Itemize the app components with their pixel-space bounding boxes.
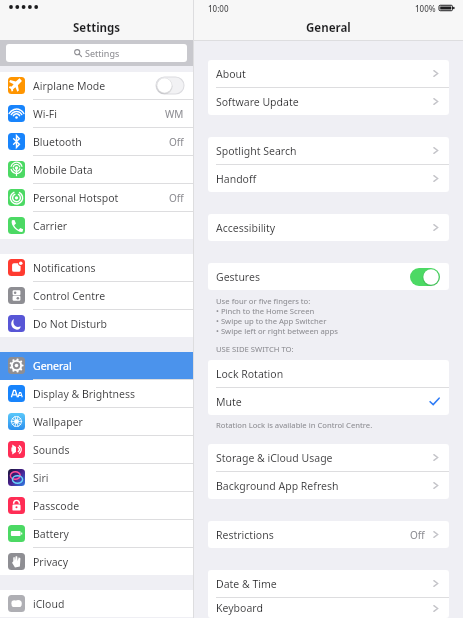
button[interactable]: Handoff	[208, 165, 449, 192]
staticText: Date & Time	[216, 577, 431, 591]
button[interactable]: Battery	[0, 520, 193, 547]
button[interactable]: Passcode	[0, 492, 193, 519]
staticText: • Swipe left or right between apps	[216, 326, 338, 336]
staticText: Carrier	[33, 219, 184, 233]
staticText: USE SIDE SWITCH TO:	[216, 344, 294, 354]
staticText: Settings	[85, 47, 120, 59]
staticText: Passcode	[33, 499, 184, 513]
staticText: Lock Rotation	[216, 367, 440, 381]
staticText: Battery	[33, 527, 184, 541]
staticText: Background App Refresh	[216, 479, 431, 493]
staticText: WM	[165, 107, 184, 121]
staticText: Spotlight Search	[216, 144, 431, 158]
button[interactable]: Background App Refresh	[208, 472, 449, 499]
staticText: About	[216, 67, 431, 81]
staticText: Restrictions	[216, 528, 410, 542]
button[interactable]: Privacy	[0, 548, 193, 575]
staticText: Storage & iCloud Usage	[216, 451, 431, 465]
button[interactable]: Airplane Mode	[0, 72, 193, 99]
button[interactable]: Bluetooth	[0, 128, 193, 155]
button[interactable]: Storage & iCloud Usage	[208, 444, 449, 471]
staticText: Software Update	[216, 95, 431, 109]
button[interactable]: Wi-Fi	[0, 100, 193, 127]
button[interactable]: Mobile Data	[0, 156, 193, 183]
staticText: Wallpaper	[33, 415, 184, 429]
staticText: Do Not Disturb	[33, 317, 184, 331]
staticText: Rotation Lock is available in Control Ce…	[216, 420, 373, 430]
staticText: Off	[169, 191, 184, 205]
staticText: Personal Hotspot	[33, 191, 169, 205]
staticText: Mobile Data	[33, 163, 184, 177]
staticText: Off	[410, 528, 425, 542]
button[interactable]: Date & Time	[208, 570, 449, 597]
button[interactable]: Control Centre	[0, 282, 193, 309]
staticText: 100%	[415, 3, 436, 14]
button[interactable]: Display & Brightness	[0, 380, 193, 407]
staticText: Keyboard	[216, 601, 431, 615]
staticText: Display & Brightness	[33, 387, 184, 401]
button[interactable]: Personal Hotspot	[0, 184, 193, 211]
staticText: Airplane Mode	[33, 79, 156, 93]
staticText: Off	[169, 135, 184, 149]
staticText: Gestures	[216, 270, 410, 284]
staticText: Mute	[216, 395, 429, 409]
staticText: Bluetooth	[33, 135, 169, 149]
button[interactable]: Search Settings	[6, 44, 187, 62]
staticText: 10:00	[208, 3, 229, 14]
button[interactable]: Spotlight Search	[208, 137, 449, 164]
staticText: Handoff	[216, 172, 431, 186]
staticText: • Swipe up to the App Switcher	[216, 316, 327, 326]
staticText: Privacy	[33, 555, 184, 569]
staticText: Accessibility	[216, 221, 431, 235]
staticText: Siri	[33, 471, 184, 485]
button[interactable]: Software Update	[208, 88, 449, 115]
staticText: Use four or five fingers to:	[216, 296, 311, 306]
button[interactable]: Switch off	[156, 77, 184, 94]
staticText: • Pinch to the Home Screen	[216, 306, 315, 316]
button[interactable]: Do Not Disturb	[0, 310, 193, 337]
staticText: General	[306, 20, 351, 36]
staticText: iCloud	[33, 597, 184, 611]
staticText: Sounds	[33, 443, 184, 457]
button[interactable]: Accessibility	[208, 214, 449, 241]
button[interactable]: Mute	[208, 388, 449, 415]
button[interactable]: Notifications	[0, 254, 193, 281]
button[interactable]: Keyboard	[208, 598, 449, 618]
staticText: General	[33, 359, 184, 373]
button[interactable]: iCloud	[0, 590, 193, 617]
button[interactable]: General	[0, 352, 193, 379]
staticText: Notifications	[33, 261, 184, 275]
button[interactable]: Restrictions	[208, 521, 449, 548]
staticText: Control Centre	[33, 289, 184, 303]
staticText: Settings	[73, 20, 121, 36]
button[interactable]: Gestures	[208, 263, 449, 290]
button[interactable]: About	[208, 60, 449, 87]
button[interactable]: Siri	[0, 464, 193, 491]
staticText: Wi-Fi	[33, 107, 165, 121]
button[interactable]: Wallpaper	[0, 408, 193, 435]
button[interactable]: Lock Rotation	[208, 360, 449, 387]
button[interactable]: Switch on	[410, 268, 440, 286]
button[interactable]: Carrier	[0, 212, 193, 239]
button[interactable]: Sounds	[0, 436, 193, 463]
